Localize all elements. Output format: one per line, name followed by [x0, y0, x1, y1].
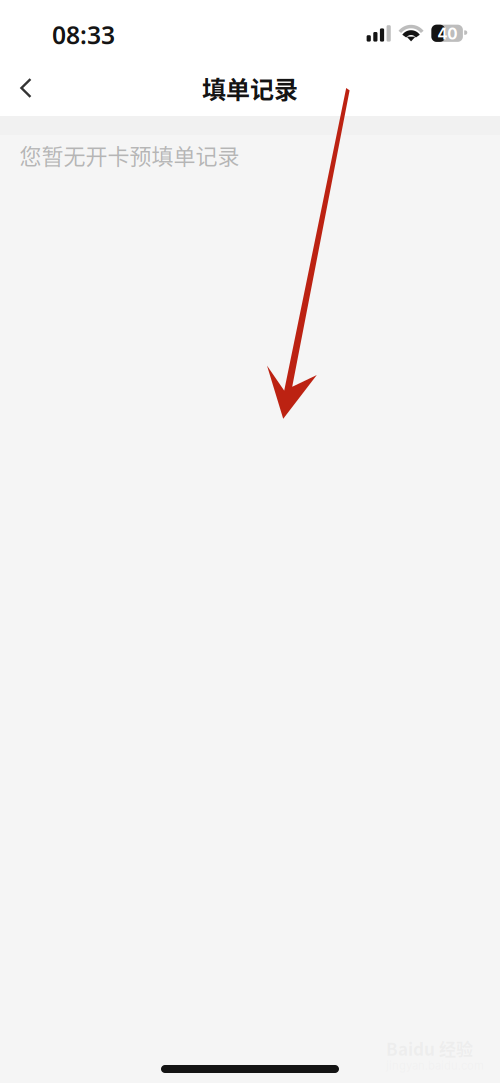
staticText: 填单记录: [202, 71, 298, 105]
staticText: Baidu 经验: [386, 1036, 473, 1061]
staticText: 40: [437, 25, 457, 43]
button[interactable]: 返回: [4, 66, 48, 110]
staticText: 08:33: [52, 18, 115, 52]
staticText: 您暂无开卡预填单记录: [19, 139, 239, 171]
